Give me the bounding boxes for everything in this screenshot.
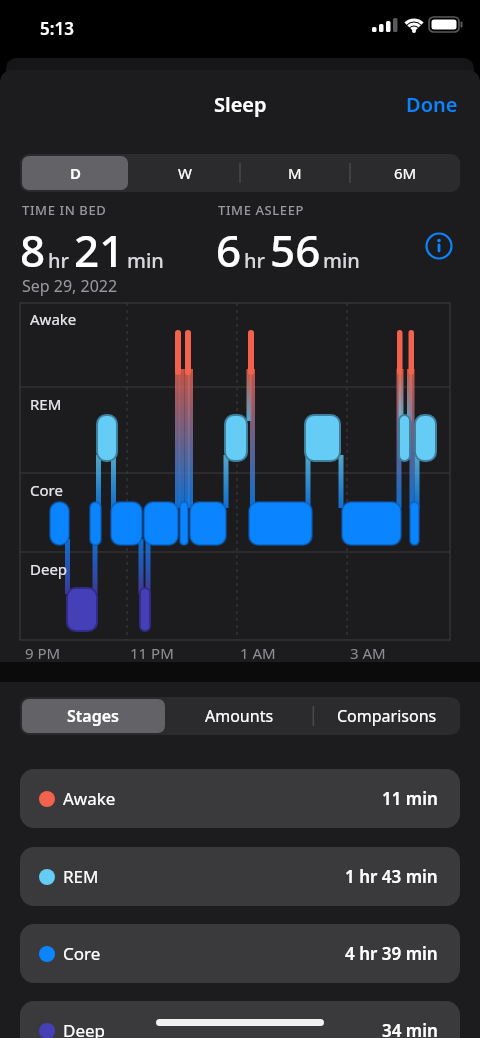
- staticText: 34 min: [382, 1019, 438, 1038]
- button[interactable]: [425, 232, 453, 260]
- staticText: Comparisons: [337, 705, 437, 727]
- staticText: 8: [20, 220, 46, 280]
- button[interactable]: Amounts: [166, 697, 313, 735]
- staticText: Done: [406, 91, 458, 118]
- staticText: Awake: [63, 787, 116, 810]
- staticText: REM: [30, 394, 62, 414]
- staticText: 56: [270, 220, 321, 280]
- staticText: Sleep: [214, 91, 267, 118]
- staticText: min: [323, 247, 360, 274]
- button[interactable]: REM: [20, 847, 460, 906]
- staticText: REM: [63, 865, 99, 888]
- button[interactable]: Comparisons: [313, 697, 460, 735]
- staticText: Amounts: [205, 705, 274, 727]
- staticText: 1 hr 43 min: [345, 865, 438, 888]
- button[interactable]: 6M: [350, 154, 460, 192]
- button[interactable]: W: [130, 154, 240, 192]
- staticText: Deep: [30, 559, 68, 579]
- staticText: hr: [48, 247, 69, 274]
- staticText: Core: [63, 942, 101, 965]
- staticText: Core: [30, 480, 63, 500]
- staticText: 1 AM: [240, 643, 276, 663]
- staticText: min: [127, 247, 164, 274]
- button[interactable]: Core: [20, 924, 460, 983]
- staticText: W: [178, 163, 192, 183]
- staticText: hr: [244, 247, 265, 274]
- staticText: 6M: [394, 163, 417, 183]
- button[interactable]: Awake: [20, 769, 460, 828]
- staticText: TIME ASLEEP: [218, 201, 305, 219]
- staticText: M: [288, 163, 302, 183]
- staticText: 11 PM: [130, 643, 174, 663]
- staticText: 9 PM: [25, 643, 61, 663]
- button[interactable]: Deep: [20, 1001, 460, 1038]
- staticText: D: [70, 163, 81, 183]
- button[interactable]: Stages: [20, 697, 166, 735]
- staticText: 3 AM: [350, 643, 386, 663]
- staticText: Stages: [67, 705, 119, 727]
- staticText: Awake: [30, 309, 77, 329]
- staticText: TIME IN BED: [22, 201, 107, 219]
- staticText: Sep 29, 2022: [22, 275, 118, 297]
- staticText: 21: [74, 220, 125, 280]
- button[interactable]: M: [240, 154, 350, 192]
- staticText: 4 hr 39 min: [345, 942, 438, 965]
- button[interactable]: D: [20, 154, 130, 192]
- staticText: 11 min: [382, 787, 438, 810]
- button[interactable]: Done: [406, 91, 458, 118]
- staticText: 6: [216, 220, 242, 280]
- staticText: Deep: [63, 1019, 106, 1038]
- staticText: 5:13: [40, 17, 74, 40]
